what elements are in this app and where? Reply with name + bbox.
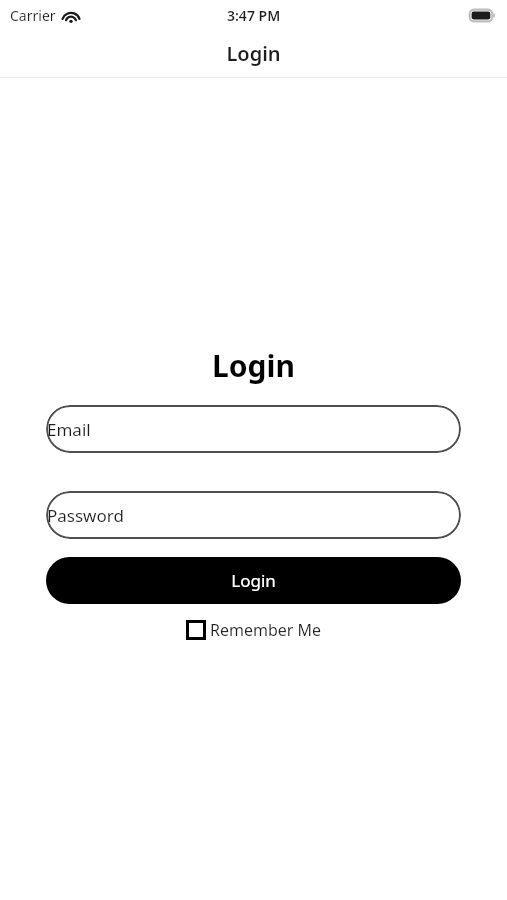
staticText: Login — [212, 345, 295, 386]
button[interactable]: Login — [46, 557, 461, 604]
staticText: Login — [231, 569, 276, 592]
other: Remember Me checkbox — [186, 620, 206, 640]
staticText: 3:47 PM — [227, 6, 281, 25]
staticText: Password — [47, 504, 124, 527]
staticText: Email — [47, 418, 91, 441]
button[interactable]: Remember Me checkbox — [184, 617, 324, 643]
staticText: Login — [226, 40, 281, 67]
staticText: Carrier — [10, 6, 56, 25]
button[interactable]: Password — [46, 491, 461, 539]
button[interactable]: Email — [46, 405, 461, 453]
staticText: Remember Me — [210, 619, 322, 641]
